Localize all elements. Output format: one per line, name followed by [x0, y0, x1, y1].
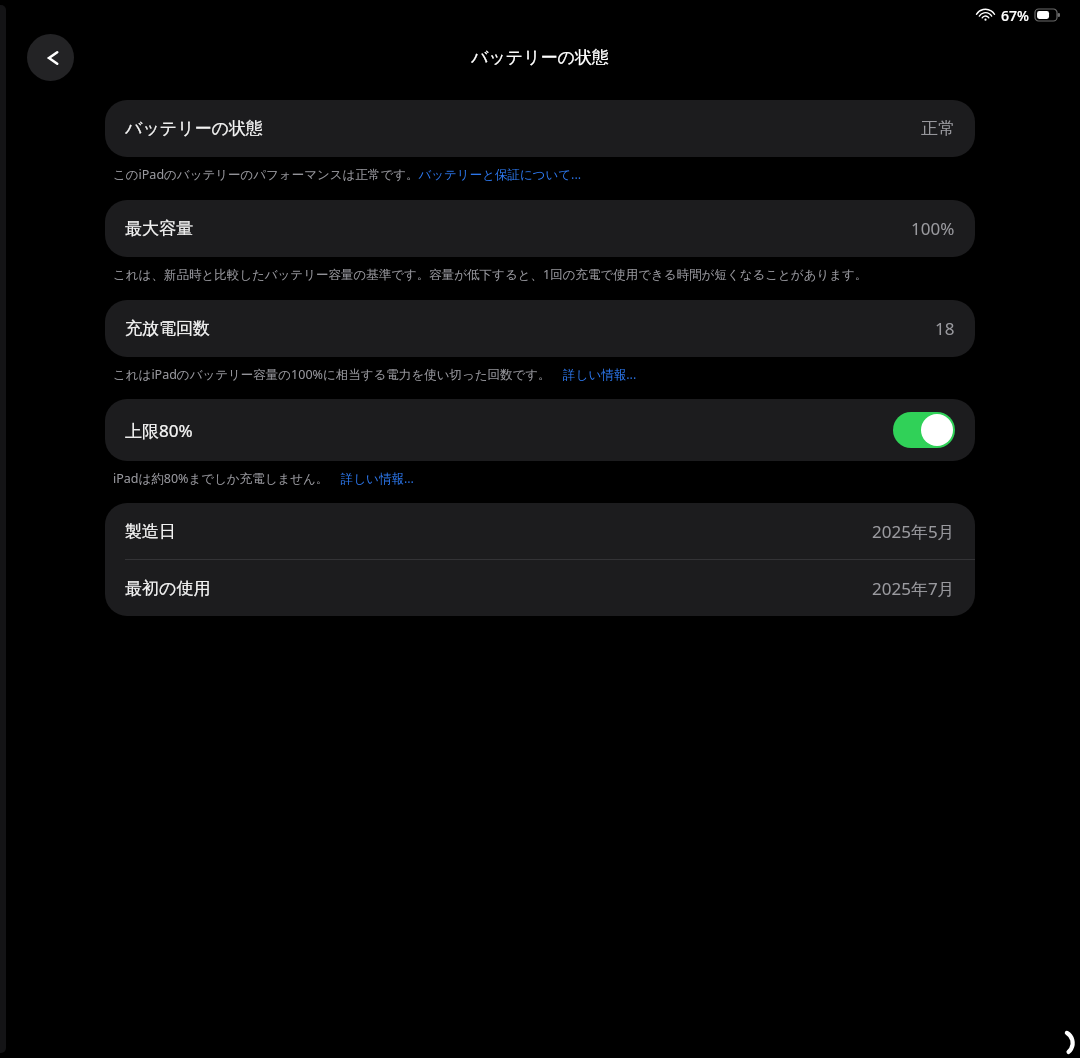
staticText: バッテリーの状態: [125, 118, 263, 139]
staticText: 充放電回数: [125, 318, 210, 339]
staticText: iPadは約80%までしか充電しません。 詳しい情報...: [113, 470, 967, 487]
button[interactable]: 戻る: [27, 34, 74, 81]
staticText: 上限80%: [125, 419, 193, 442]
staticText: 100%: [911, 217, 955, 240]
staticText: 2025年5月: [872, 520, 955, 543]
button[interactable]: 上限80% スイッチ: [893, 412, 955, 448]
staticText: 18: [935, 317, 955, 340]
staticText: これはiPadのバッテリー容量の100%に相当する電力を使い切った回数です。 詳…: [113, 366, 967, 383]
staticText: 正常: [921, 118, 955, 139]
button[interactable]: 最初の使用: [105, 560, 975, 616]
staticText: 最大容量: [125, 218, 193, 239]
staticText: 最初の使用: [125, 578, 211, 599]
staticText: 製造日: [125, 521, 176, 542]
button[interactable]: 最大容量: [105, 200, 975, 257]
staticText: バッテリーの状態: [471, 47, 609, 68]
button[interactable]: 充放電回数: [105, 300, 975, 357]
staticText: このiPadのバッテリーのパフォーマンスは正常です。バッテリーと保証について..…: [113, 166, 967, 183]
button[interactable]: 製造日: [105, 503, 975, 559]
staticText: 67%: [1001, 6, 1029, 25]
staticText: 2025年7月: [872, 577, 955, 600]
button[interactable]: 上限80%: [105, 399, 975, 461]
staticText: これは、新品時と比較したバッテリー容量の基準です。容量が低下すると、1回の充電で…: [113, 266, 967, 283]
button[interactable]: バッテリーの状態: [105, 100, 975, 157]
